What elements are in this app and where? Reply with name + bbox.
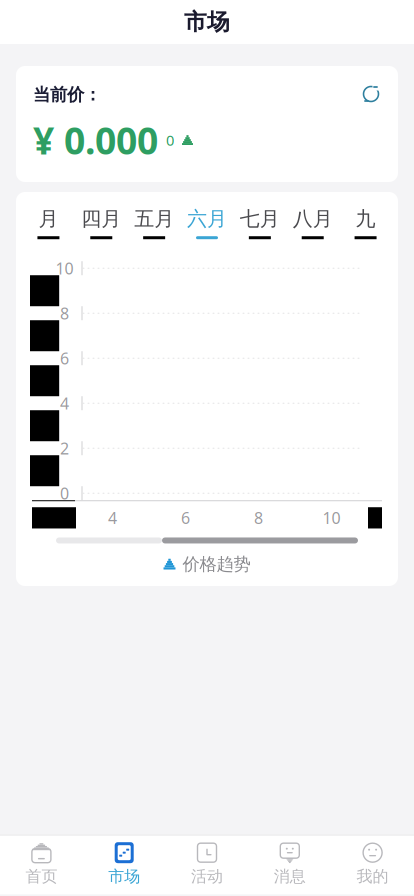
staticText: 当前价： <box>33 84 101 105</box>
staticText: 10 <box>55 258 73 279</box>
staticText: 六月 <box>187 207 227 231</box>
staticText: 6 <box>181 507 190 528</box>
button[interactable]: 八月 <box>286 203 339 243</box>
staticText: 消息 <box>274 867 306 886</box>
staticText: 活动 <box>191 867 223 886</box>
button[interactable]: 六月 <box>181 203 233 243</box>
button[interactable]: 刷新 <box>361 84 381 104</box>
staticText: 市场 <box>108 867 140 886</box>
staticText: 2 <box>60 438 69 459</box>
staticText: 八月 <box>293 207 333 231</box>
staticText: 4 <box>60 393 69 414</box>
staticText: 0 <box>166 130 174 150</box>
staticText: 8 <box>254 507 263 528</box>
button[interactable]: 七月 <box>233 203 286 243</box>
staticText: 我的 <box>357 867 389 886</box>
button[interactable]: 月 <box>22 203 75 243</box>
staticText: 首页 <box>25 867 57 886</box>
button[interactable]: 五月 <box>128 203 181 243</box>
staticText: 市场 <box>184 8 230 36</box>
button[interactable]: 九 <box>339 203 392 243</box>
button[interactable]: 市场 <box>83 836 166 894</box>
staticText: 0 <box>60 483 69 504</box>
staticText: 七月 <box>240 207 280 231</box>
staticText: 6 <box>60 348 69 369</box>
staticText: 四月 <box>81 207 121 231</box>
button[interactable]: 活动 <box>166 836 248 894</box>
button[interactable]: 四月 <box>75 203 128 243</box>
button[interactable]: 消息 <box>248 836 331 894</box>
staticText: ¥ 0.000 <box>33 115 158 165</box>
staticText: 五月 <box>134 207 174 231</box>
staticText: 价格趋势 <box>182 553 250 575</box>
button[interactable]: 我的 <box>331 836 414 894</box>
staticText: 九 <box>356 207 376 231</box>
staticText: 8 <box>60 303 69 324</box>
button[interactable]: 首页 <box>0 836 83 894</box>
staticText: 4 <box>108 507 117 528</box>
staticText: 10 <box>322 507 340 528</box>
staticText: 月 <box>38 207 58 231</box>
